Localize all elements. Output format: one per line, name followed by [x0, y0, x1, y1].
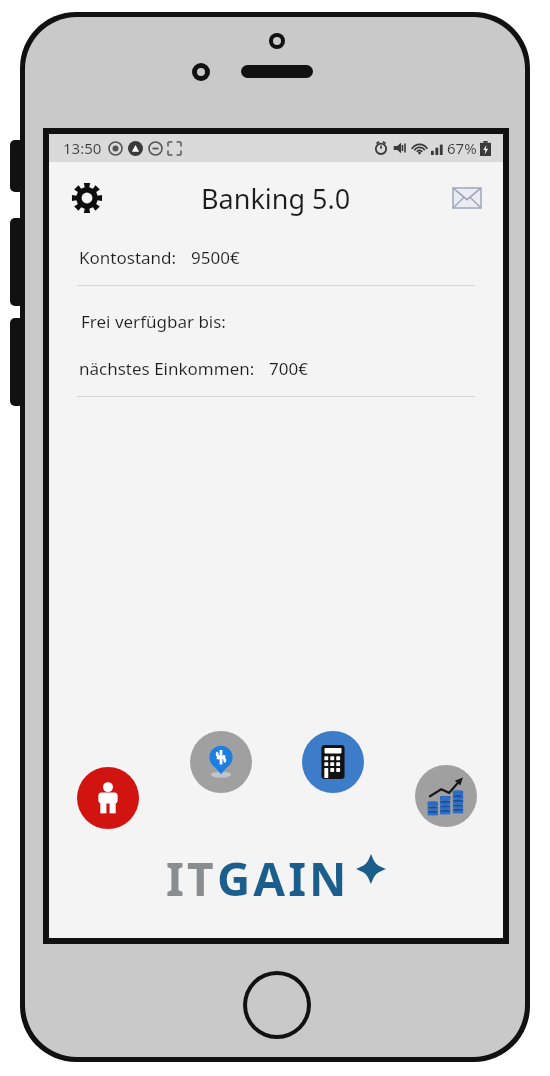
staticText: Kontostand:	[79, 246, 177, 269]
button[interactable]: Calculator	[302, 731, 364, 793]
staticText: 700€	[269, 357, 308, 380]
staticText: 13:50	[63, 138, 102, 158]
button[interactable]: Settings	[63, 174, 111, 222]
staticText: GAIN	[217, 847, 350, 910]
button[interactable]: Messages	[445, 176, 489, 220]
button[interactable]: Investments	[415, 765, 477, 827]
staticText: IT	[166, 847, 217, 910]
staticText: 9500€	[191, 246, 240, 269]
staticText: Banking 5.0	[201, 180, 351, 217]
staticText: 67%	[447, 138, 477, 158]
staticText: Frei verfügbar bis:	[81, 310, 226, 333]
staticText: nächstes Einkommen:	[79, 357, 255, 380]
button[interactable]: Profile	[77, 767, 139, 829]
button[interactable]: Payments	[190, 731, 252, 793]
